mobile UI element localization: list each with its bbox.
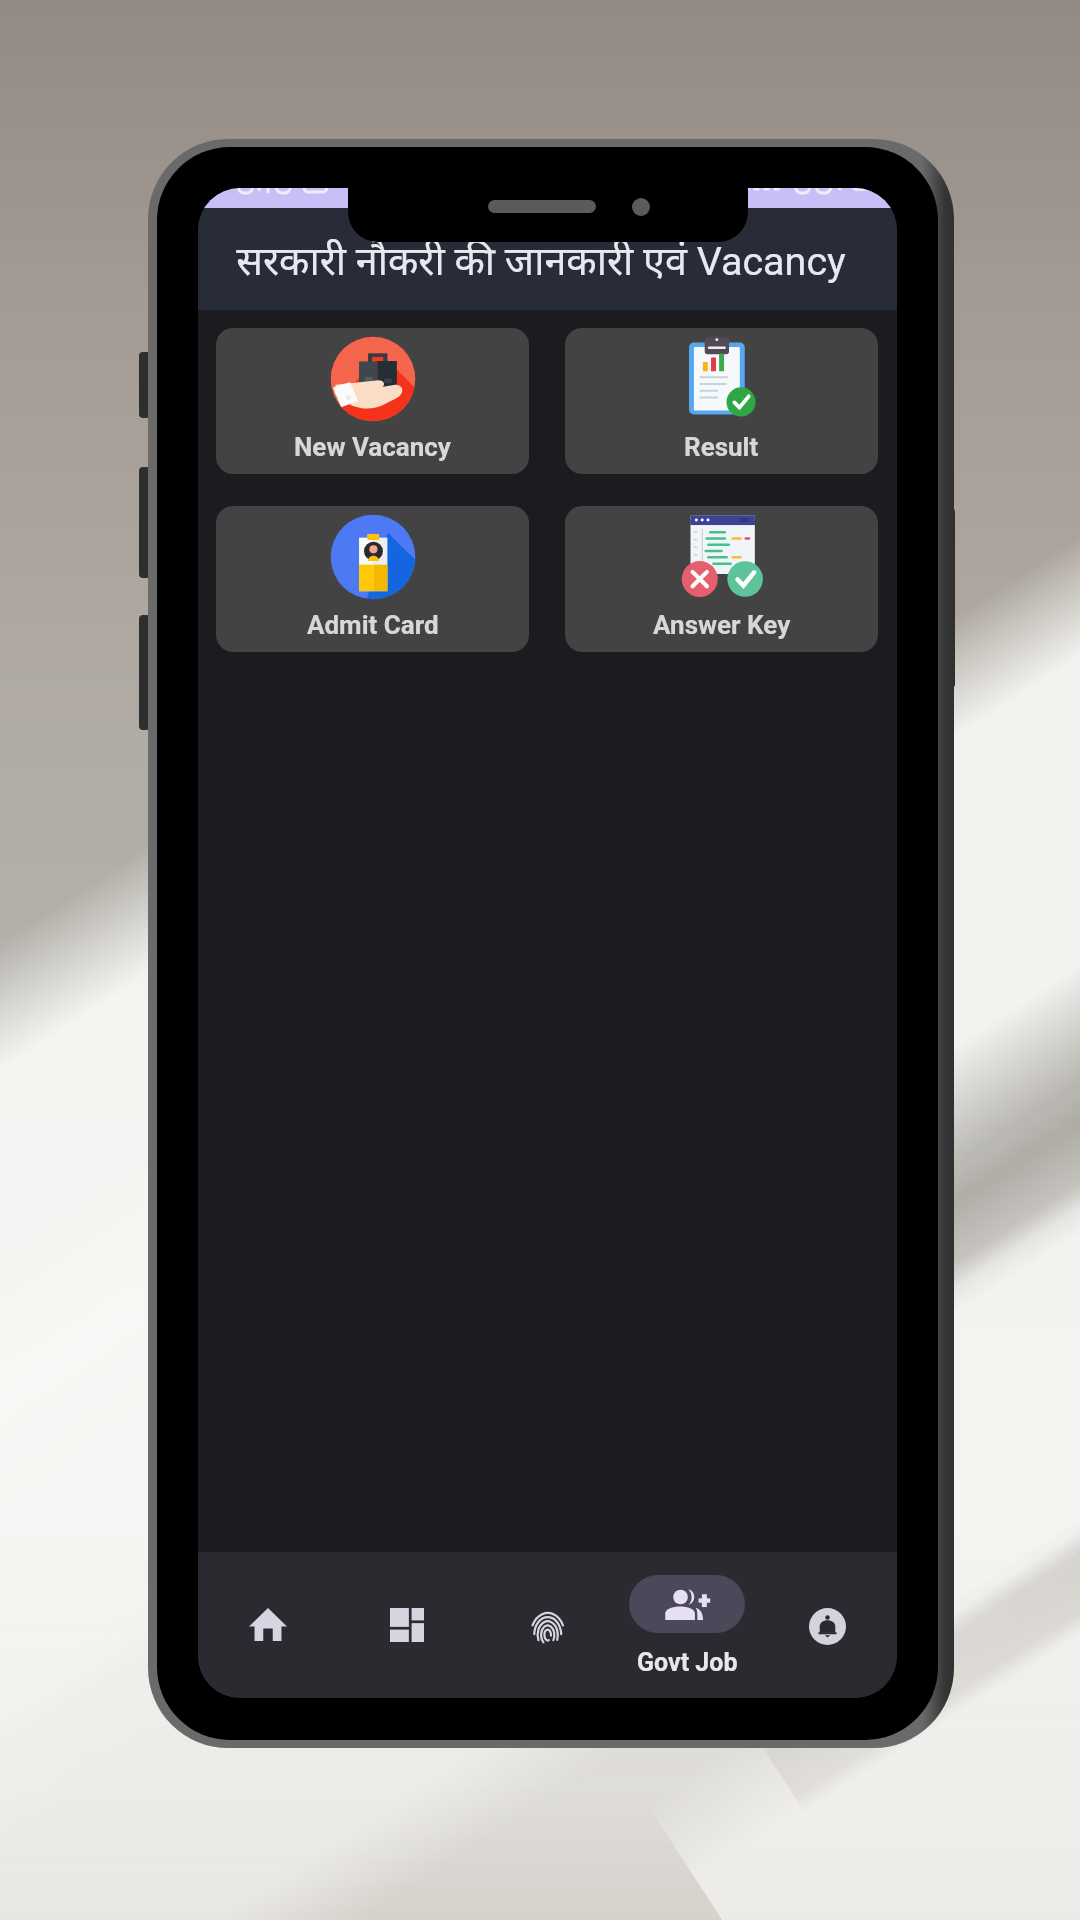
button[interactable]: Fingerprint login <box>477 1552 617 1698</box>
staticText: सरकारी नौकरी की जानकारी एवं Vacancy <box>236 233 846 287</box>
staticText: New Vacancy <box>294 432 451 462</box>
staticText: Answer Key <box>653 610 791 640</box>
button[interactable]: Govt Job <box>617 1552 757 1698</box>
button[interactable]: Admit Card <box>216 506 529 652</box>
button[interactable]: Answer Key <box>565 506 878 652</box>
button[interactable]: Dashboard <box>337 1552 477 1698</box>
button[interactable]: Result <box>565 328 878 474</box>
button[interactable]: Home <box>198 1552 337 1698</box>
button[interactable]: New Vacancy <box>216 328 529 474</box>
button[interactable]: Notifications <box>757 1552 897 1698</box>
staticText: Govt Job <box>637 1648 738 1677</box>
staticText: Admit Card <box>307 610 439 640</box>
staticText: Result <box>684 432 759 462</box>
